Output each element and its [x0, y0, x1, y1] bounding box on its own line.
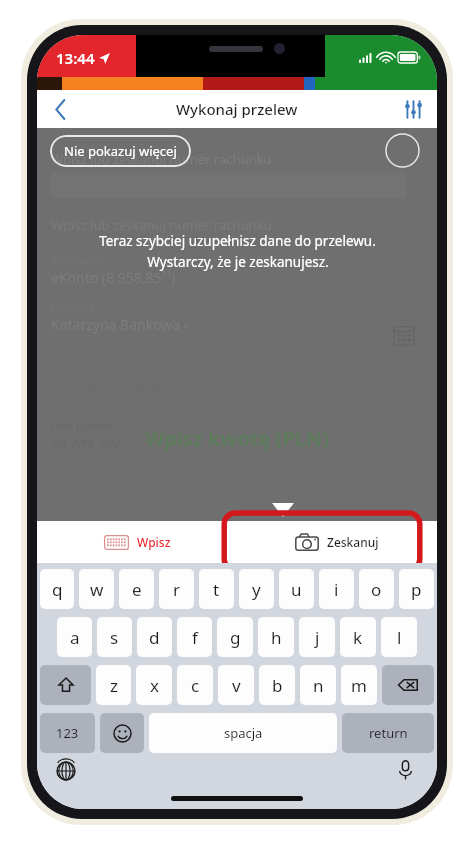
button[interactable]: Zamknij	[385, 133, 420, 168]
staticText: d	[149, 626, 160, 649]
button[interactable]: r	[159, 569, 194, 609]
button[interactable]: Wstecz	[37, 90, 83, 128]
staticText: m	[351, 674, 367, 697]
button[interactable]: n	[300, 665, 336, 705]
button[interactable]: spacja	[149, 713, 337, 753]
staticText: c	[191, 674, 200, 697]
button[interactable]: Emoji	[100, 713, 144, 753]
staticText: Wpisz	[137, 534, 171, 550]
button[interactable]: e	[119, 569, 154, 609]
staticText: spacja	[224, 724, 263, 742]
staticText: return	[369, 724, 408, 742]
button[interactable]: w	[79, 569, 114, 609]
staticText: Nie pokazuj więcej	[64, 142, 177, 160]
staticText: Wystarczy, że je zeskanujesz.	[147, 253, 329, 271]
button[interactable]: Backspace	[382, 665, 434, 705]
button[interactable]: b	[259, 665, 295, 705]
staticText: k	[353, 626, 363, 649]
staticText: p	[411, 578, 422, 601]
staticText: n	[313, 674, 324, 697]
staticText: g	[230, 626, 241, 649]
button[interactable]: Shift	[40, 665, 91, 705]
staticText: Teraz szybciej uzupełnisz dane do przele…	[99, 232, 376, 250]
button[interactable]: k	[340, 617, 376, 657]
staticText: e	[132, 578, 142, 601]
staticText: b	[272, 674, 283, 697]
staticText: 13:44	[56, 48, 95, 68]
button[interactable]: Wpisz	[37, 521, 237, 563]
button[interactable]: v	[218, 665, 254, 705]
staticText: q	[52, 578, 63, 601]
staticText: v	[232, 674, 241, 697]
button[interactable]: j	[299, 617, 335, 657]
staticText: u	[291, 578, 302, 601]
button[interactable]: u	[279, 569, 314, 609]
button[interactable]: s	[97, 617, 132, 657]
button[interactable]: Ustawienia	[389, 90, 437, 128]
staticText: z	[110, 674, 118, 697]
staticText: o	[371, 578, 382, 601]
button[interactable]: Zeskanuj	[237, 521, 437, 563]
staticText: Wykonaj przelew	[176, 99, 298, 119]
staticText: r	[173, 578, 181, 601]
staticText: Wpisz lub zeskanuj numer rachunku	[51, 216, 272, 234]
button[interactable]: z	[96, 665, 131, 705]
button[interactable]: y	[239, 569, 274, 609]
button[interactable]: c	[177, 665, 213, 705]
staticText: t	[213, 578, 220, 601]
staticText: 123	[56, 724, 79, 742]
button[interactable]: t	[199, 569, 234, 609]
staticText: j	[315, 626, 320, 649]
button[interactable]: l	[381, 617, 417, 657]
button[interactable]: return	[342, 713, 434, 753]
button[interactable]: i	[319, 569, 354, 609]
button[interactable]: Nie pokazuj więcej	[50, 135, 191, 167]
staticText: l	[397, 626, 402, 649]
button[interactable]: h	[258, 617, 294, 657]
staticText: x	[150, 674, 159, 697]
staticText: h	[271, 626, 282, 649]
staticText: y	[252, 578, 261, 601]
staticText: s	[110, 626, 119, 649]
staticText: Wpisz lub zeskanuj numer rachunku	[51, 150, 272, 168]
button[interactable]: Zmień język	[53, 758, 79, 784]
staticText: eKonto (8 958,85¹¹)	[51, 268, 176, 287]
button[interactable]: x	[136, 665, 172, 705]
staticText: i	[334, 578, 339, 601]
button[interactable]: o	[359, 569, 394, 609]
button[interactable]: m	[341, 665, 377, 705]
button[interactable]: d	[137, 617, 172, 657]
button[interactable]: q	[40, 569, 74, 609]
staticText: Katarzyna Bankowa ‹	[51, 315, 189, 334]
staticText: Zeskanuj	[327, 534, 379, 550]
button[interactable]: 123	[40, 713, 95, 753]
staticText: f	[192, 626, 198, 649]
button[interactable]: p	[399, 569, 434, 609]
staticText: Wpisz kwotę (PLN)	[145, 425, 329, 452]
staticText: a	[70, 626, 80, 649]
button[interactable]: g	[217, 617, 253, 657]
button[interactable]: a	[57, 617, 92, 657]
button[interactable]: Dyktowanie	[392, 757, 418, 783]
button[interactable]: f	[177, 617, 212, 657]
staticText: w	[90, 578, 104, 601]
